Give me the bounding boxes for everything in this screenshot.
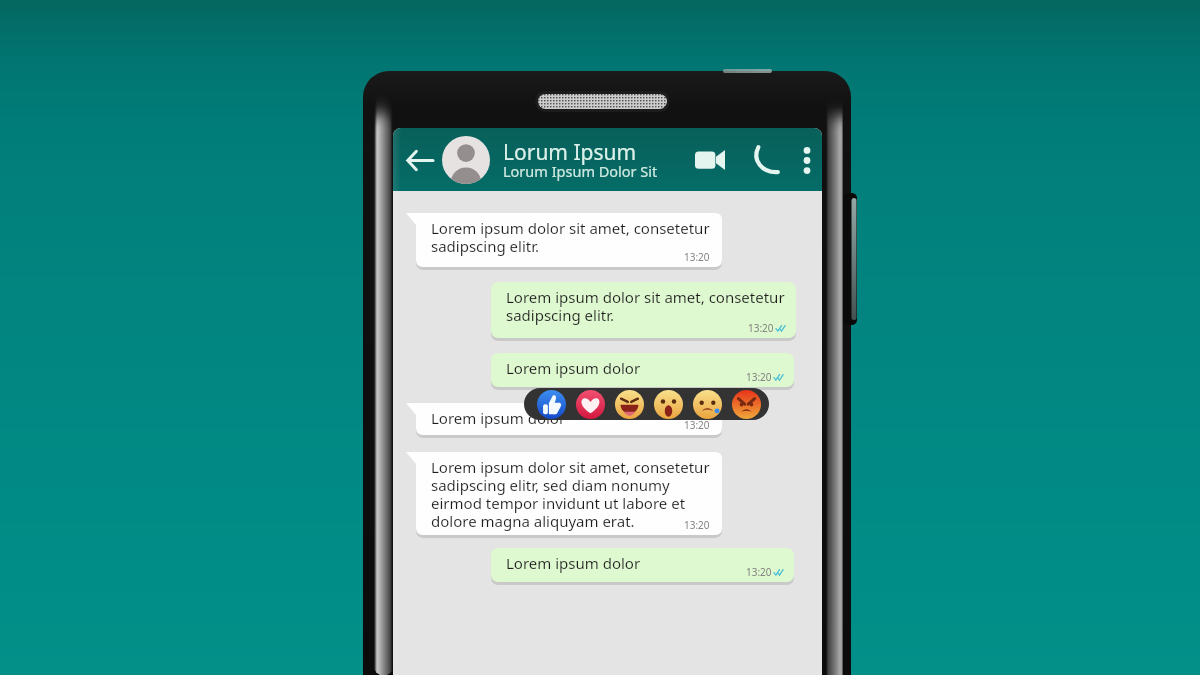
button[interactable]: Lorem ipsum dolor <box>491 353 794 387</box>
button[interactable]: Lorem ipsum dolor <box>491 548 794 582</box>
button[interactable]: Back <box>405 145 435 175</box>
button[interactable]: Lorem ipsum dolor sit amet, consetetur s… <box>406 213 722 267</box>
staticText: 13:20 <box>684 418 710 432</box>
button[interactable]: Voice call <box>747 141 785 179</box>
staticText: Lorum Ipsum <box>503 138 637 167</box>
button[interactable]: Profile photo <box>442 136 490 184</box>
staticText: 13:20 <box>748 321 774 335</box>
staticText: Lorem ipsum dolor sit amet, consetetur s… <box>431 457 710 531</box>
staticText: 13:20 <box>746 565 772 579</box>
staticText: Lorem ipsum dolor sit amet, consetetur s… <box>431 218 710 256</box>
button[interactable]: Lorem ipsum dolor sit amet, consetetur s… <box>491 282 796 338</box>
button[interactable]: More options <box>792 141 822 179</box>
button[interactable]: Video call <box>691 140 729 180</box>
button[interactable]: Lorem ipsum dolor <box>406 403 722 435</box>
staticText: Lorem ipsum dolor sit amet, consetetur s… <box>506 287 785 325</box>
button[interactable]: Message reactions <box>524 388 769 420</box>
button[interactable]: Lorem ipsum dolor sit amet, consetetur s… <box>406 452 722 535</box>
staticText: Lorem ipsum dolor <box>431 408 566 428</box>
staticText: 13:20 <box>746 370 772 384</box>
staticText: Lorem ipsum dolor <box>506 553 641 573</box>
staticText: Lorum Ipsum Dolor Sit <box>503 161 658 181</box>
staticText: Lorem ipsum dolor <box>506 358 641 378</box>
staticText: 13:20 <box>684 518 710 532</box>
staticText: 13:20 <box>684 250 710 264</box>
